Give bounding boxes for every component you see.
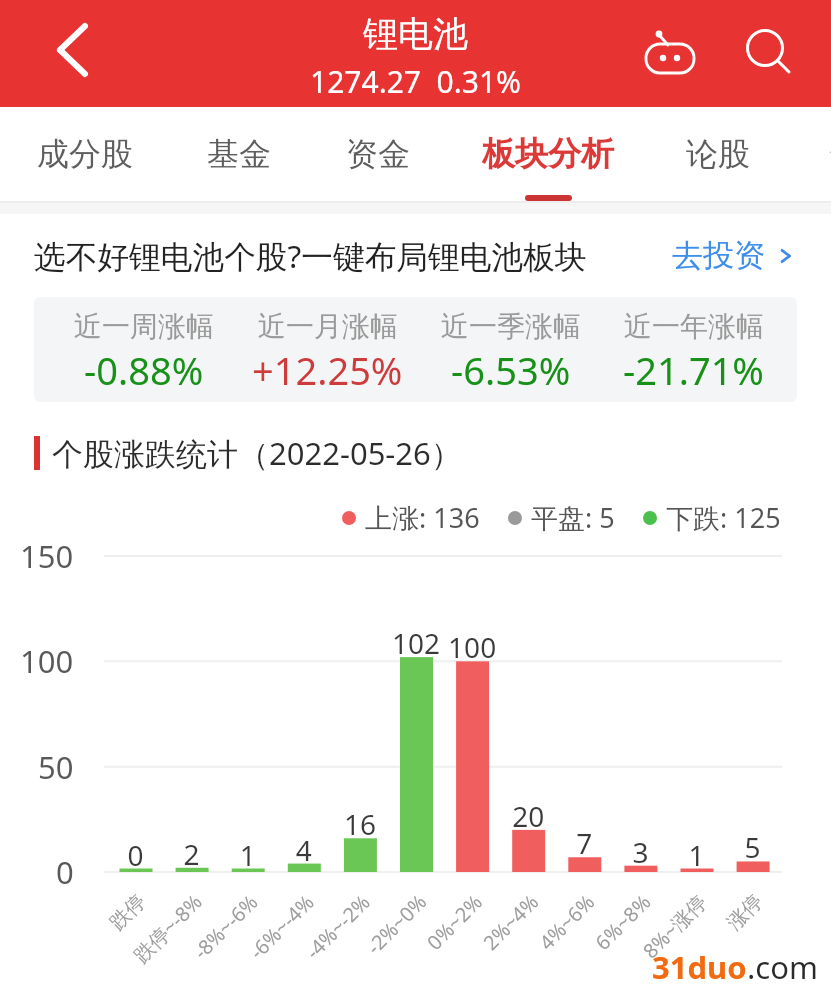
button[interactable]: 成分股: [0, 107, 170, 201]
staticText: 平盘: 5: [531, 499, 615, 536]
staticText: 上涨: 136: [365, 499, 480, 536]
staticText: 31duo: [652, 946, 747, 988]
button[interactable]: Search: [717, 0, 813, 107]
staticText: 基金: [207, 134, 271, 174]
staticText: -6.53%: [451, 344, 571, 396]
staticText: -0.88%: [84, 344, 204, 396]
staticText: 近一年涨幅: [624, 309, 764, 344]
staticText: 板块分析: [482, 133, 614, 175]
button[interactable]: 近一年涨幅: [602, 297, 785, 402]
staticText: 资讯: [828, 134, 831, 174]
staticText: 去投资: [672, 236, 765, 275]
staticText: 1274.27 0.31%: [310, 61, 522, 102]
button[interactable]: 板块分析: [448, 107, 648, 201]
staticText: 近一周涨幅: [74, 309, 214, 344]
staticText: 论股: [686, 134, 750, 174]
staticText: -21.71%: [623, 344, 764, 396]
button[interactable]: 近一周涨幅: [52, 297, 236, 402]
button[interactable]: 近一月涨幅: [236, 297, 419, 402]
staticText: 近一季涨幅: [441, 309, 581, 344]
staticText: 锂电池: [363, 12, 468, 56]
staticText: .com: [747, 946, 818, 988]
staticText: 选不好锂电池个股?一键布局锂电池板块: [34, 234, 587, 277]
button[interactable]: 基金: [170, 107, 308, 201]
staticText: 下跌: 125: [666, 499, 781, 536]
staticText: 资金: [346, 134, 410, 174]
staticText: 个股涨跌统计（2022-05-26）: [52, 432, 462, 474]
button[interactable]: 论股: [648, 107, 788, 201]
button[interactable]: 资金: [308, 107, 448, 201]
button[interactable]: Back: [0, 0, 116, 107]
staticText: +12.25%: [252, 344, 403, 396]
staticText: 近一月涨幅: [258, 309, 398, 344]
staticText: 成分股: [37, 134, 133, 174]
button[interactable]: 选不好锂电池个股?一键布局锂电池板块: [0, 214, 831, 297]
button[interactable]: 资讯: [828, 107, 831, 201]
button[interactable]: 近一季涨幅: [419, 297, 602, 402]
button[interactable]: AI assistant: [622, 0, 718, 107]
